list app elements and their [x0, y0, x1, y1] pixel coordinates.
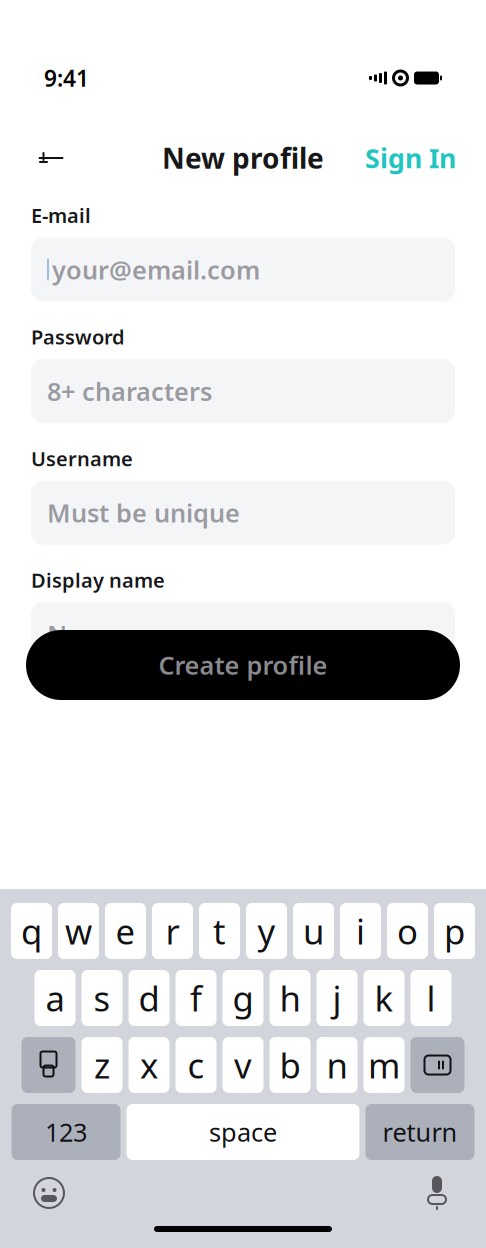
button[interactable]: t — [199, 903, 240, 959]
staticText: a — [45, 975, 64, 1021]
staticText: z — [94, 1042, 110, 1088]
staticText: Display name — [31, 567, 165, 593]
button[interactable]: 123 — [11, 1104, 120, 1160]
button[interactable]: q — [11, 903, 52, 959]
staticText: Name — [47, 617, 121, 651]
button[interactable]: l — [410, 970, 451, 1026]
staticText: j — [332, 975, 341, 1021]
staticText: d — [138, 975, 159, 1021]
staticText: f — [190, 975, 202, 1021]
staticText: i — [356, 908, 365, 954]
staticText: b — [279, 1042, 300, 1088]
staticText: Must be unique — [47, 496, 240, 529]
staticText: Password — [31, 324, 125, 350]
staticText: o — [397, 908, 418, 954]
staticText: g — [232, 975, 253, 1021]
staticText: s — [93, 975, 110, 1021]
staticText: x — [140, 1042, 158, 1088]
staticText: n — [326, 1042, 347, 1088]
staticText: q — [21, 908, 42, 954]
staticText: your@email.com — [52, 253, 260, 286]
button[interactable]: u — [293, 903, 334, 959]
button[interactable]: c — [175, 1037, 216, 1093]
button[interactable]: g — [222, 970, 263, 1026]
staticText: 123 — [45, 1115, 87, 1149]
button[interactable]: n — [316, 1037, 357, 1093]
button[interactable]: i — [340, 903, 381, 959]
staticText: New profile — [162, 139, 324, 177]
staticText: y — [257, 908, 275, 954]
button[interactable]: z — [81, 1037, 122, 1093]
staticText: w — [65, 908, 92, 954]
button[interactable]: b — [269, 1037, 310, 1093]
button[interactable]: w — [58, 903, 99, 959]
staticText: m — [368, 1042, 400, 1088]
button[interactable]: return — [365, 1104, 474, 1160]
button[interactable]: Sign In — [365, 137, 456, 179]
button[interactable]: x — [128, 1037, 169, 1093]
staticText: h — [279, 975, 300, 1021]
button[interactable]: k — [363, 970, 404, 1026]
staticText: l — [426, 975, 435, 1021]
button[interactable]: r — [152, 903, 193, 959]
button[interactable]: h — [269, 970, 310, 1026]
button[interactable]: p — [434, 903, 475, 959]
button[interactable]: a — [34, 970, 75, 1026]
staticText: c — [187, 1042, 204, 1088]
button[interactable]: Create profile — [0, 630, 486, 700]
staticText: p — [444, 908, 465, 954]
staticText: Username — [31, 445, 133, 472]
button[interactable]: y — [246, 903, 287, 959]
staticText: E-mail — [31, 202, 91, 229]
staticText: Sign In — [365, 140, 456, 176]
staticText: t — [213, 908, 226, 954]
button[interactable]: e — [105, 903, 146, 959]
button[interactable]: space — [126, 1104, 359, 1160]
button[interactable]: Back — [30, 137, 72, 179]
button[interactable]: j — [316, 970, 357, 1026]
staticText: k — [374, 975, 393, 1021]
button[interactable]: Delete — [410, 1037, 464, 1093]
button[interactable]: f — [175, 970, 216, 1026]
staticText: Create profile — [158, 648, 327, 682]
staticText: u — [303, 908, 324, 954]
button[interactable]: o — [387, 903, 428, 959]
staticText: v — [234, 1042, 252, 1088]
button[interactable]: Shift — [21, 1037, 75, 1093]
button[interactable]: d — [128, 970, 169, 1026]
button[interactable]: Dictate — [414, 1171, 460, 1215]
staticText: r — [165, 908, 179, 954]
button[interactable]: v — [222, 1037, 263, 1093]
staticText: e — [115, 908, 135, 954]
staticText: 8+ characters — [47, 374, 212, 408]
button[interactable]: m — [363, 1037, 404, 1093]
button[interactable]: s — [81, 970, 122, 1026]
staticText: 9:41 — [44, 63, 89, 93]
staticText: space — [209, 1115, 277, 1149]
staticText: return — [382, 1115, 457, 1149]
button[interactable]: Emoji — [26, 1171, 72, 1215]
